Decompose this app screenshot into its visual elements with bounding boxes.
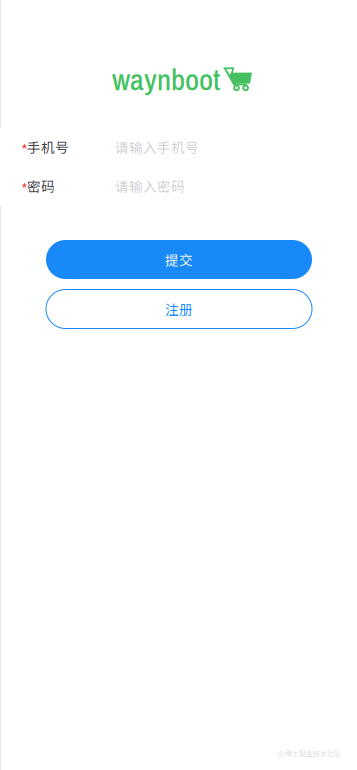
staticText: 请输入密码 <box>115 176 185 196</box>
button[interactable]: 提交 <box>46 240 312 279</box>
staticText: 手机号 <box>27 137 69 157</box>
staticText: 密码 <box>27 176 55 196</box>
button[interactable]: * <box>0 167 357 206</box>
staticText: 注册 <box>165 299 193 319</box>
button[interactable]: * <box>0 128 357 167</box>
staticText: * <box>21 138 28 159</box>
staticText: @稀土掘金技术社区 <box>278 748 341 758</box>
staticText: waynboot <box>112 59 220 100</box>
button[interactable]: 注册 <box>46 289 312 328</box>
staticText: 提交 <box>165 250 193 269</box>
staticText: 请输入手机号 <box>115 137 199 157</box>
staticText: * <box>21 177 28 198</box>
